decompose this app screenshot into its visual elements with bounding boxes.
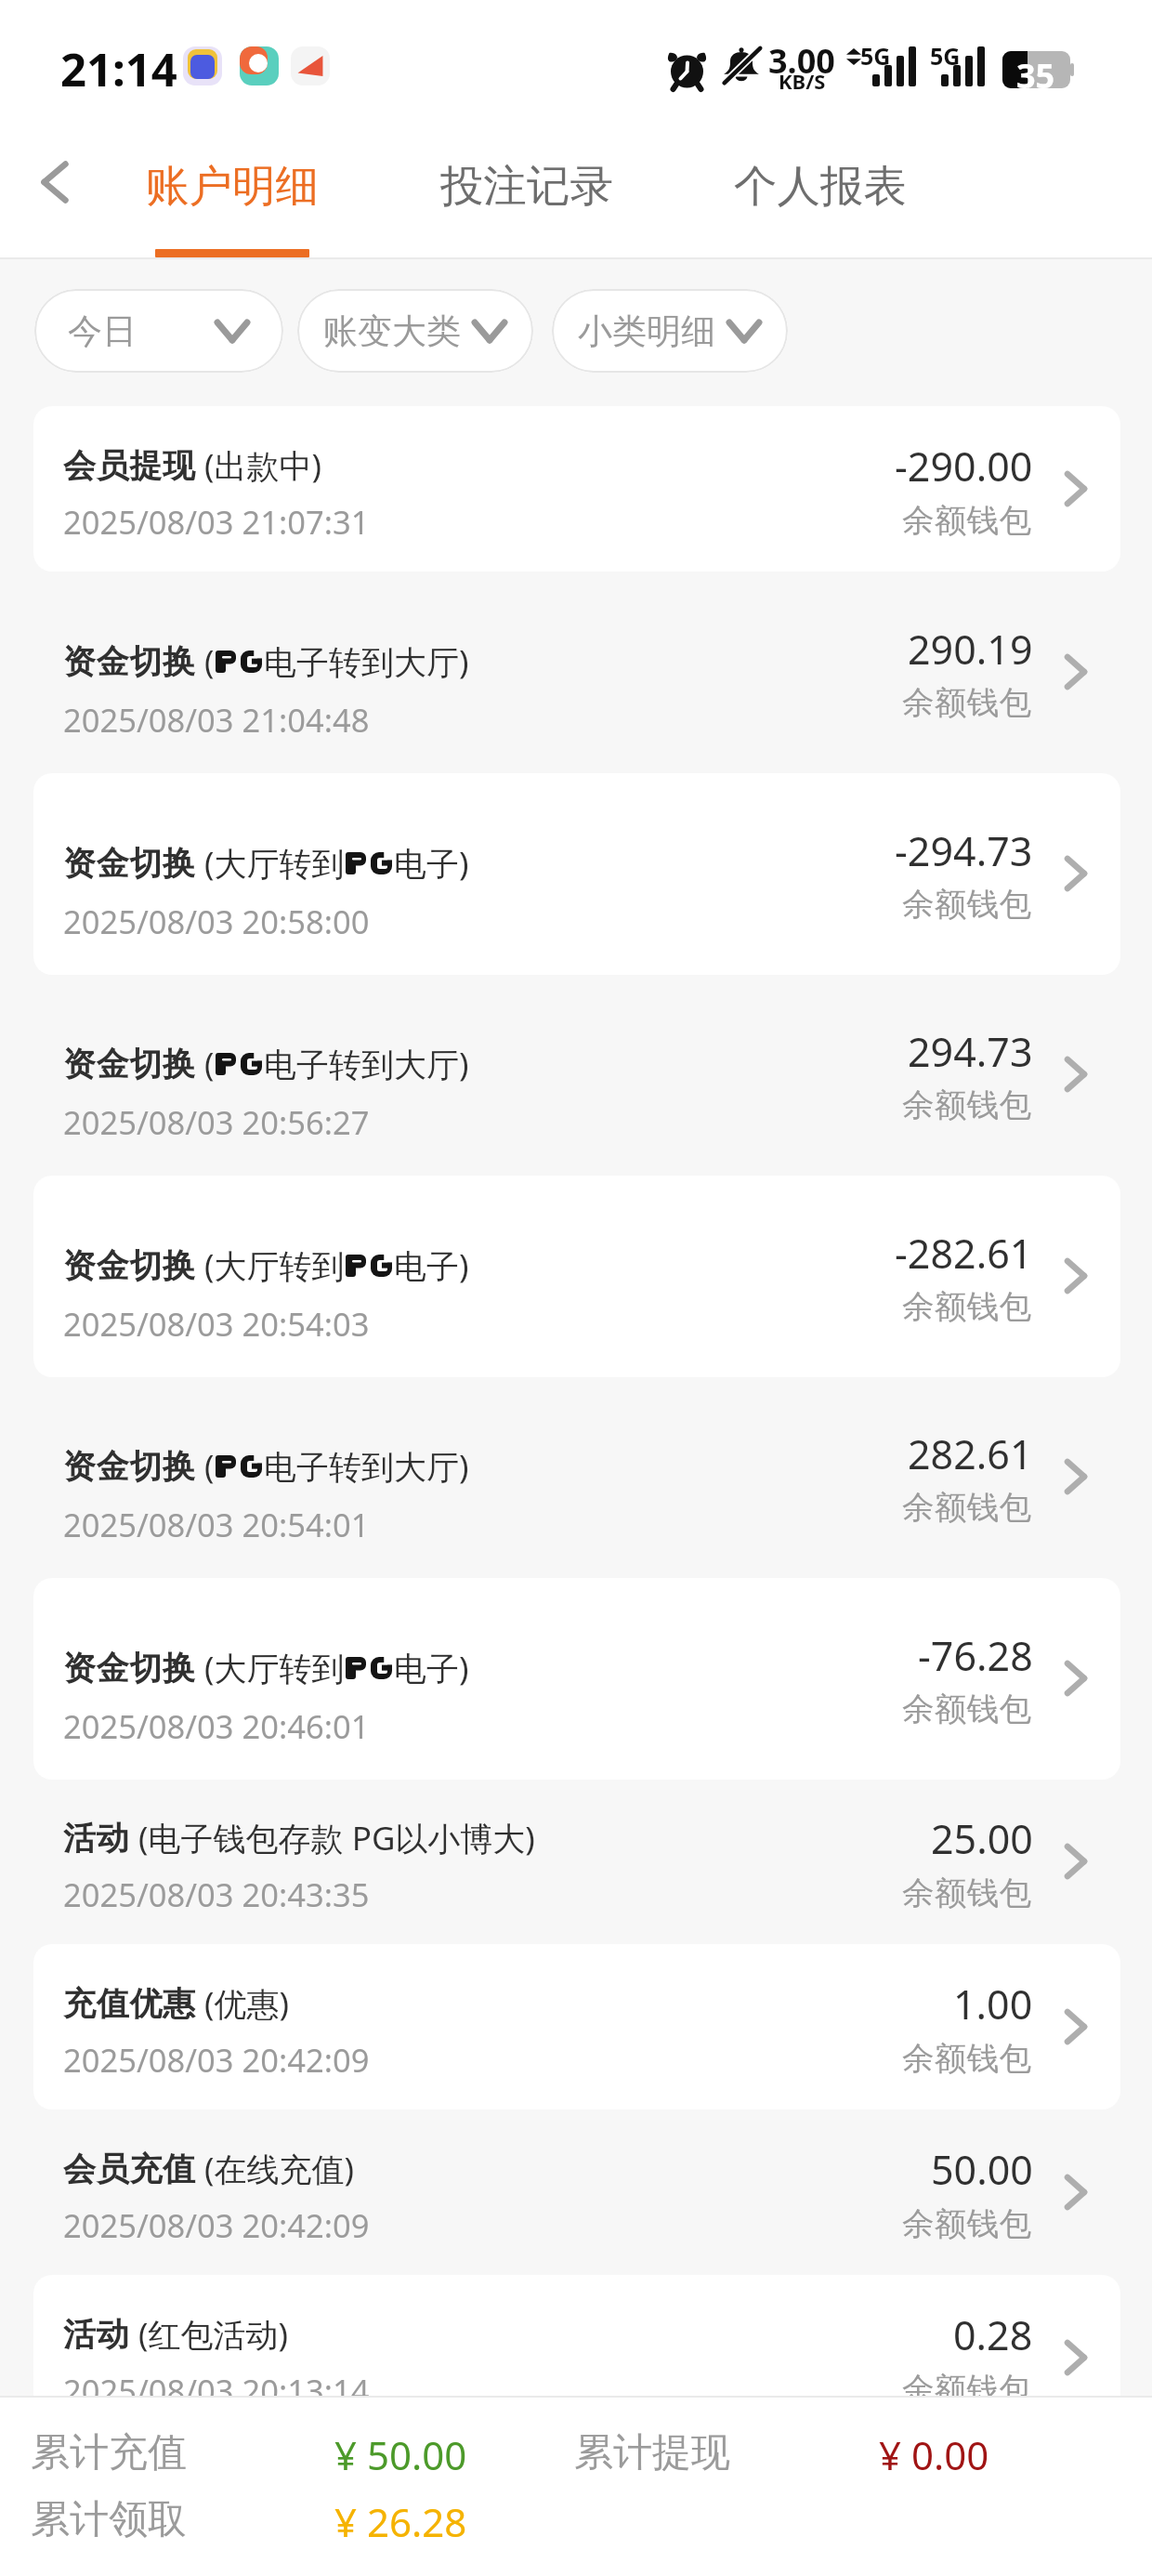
staticText: 余额钱包	[902, 682, 1032, 723]
staticText: 资金切换	[63, 1245, 196, 1286]
staticText: 累计领取	[31, 2495, 187, 2544]
staticText: 余额钱包	[902, 1689, 1032, 1729]
staticText: 余额钱包	[902, 2038, 1032, 2079]
staticText: 充值优惠	[63, 1983, 196, 2024]
staticText: 290.19	[908, 622, 1033, 677]
staticText: 2025/08/03 21:04:48	[63, 698, 370, 742]
staticText: 2025/08/03 20:46:01	[63, 1704, 370, 1748]
staticText: 2025/08/03 20:54:01	[63, 1503, 370, 1546]
staticText: 今日	[68, 309, 137, 353]
staticText: 电子)	[394, 1243, 469, 1288]
staticText: 2025/08/03 20:42:09	[63, 2038, 370, 2082]
staticText: 25.00	[931, 1811, 1033, 1866]
staticText: 电子转到大厅)	[264, 1042, 469, 1086]
staticText: 282.61	[908, 1426, 1033, 1481]
staticText: -76.28	[918, 1628, 1033, 1683]
button[interactable]: 小类明细	[552, 289, 788, 373]
button[interactable]: 账变大类	[297, 289, 533, 373]
staticText: 投注记录	[440, 159, 613, 214]
staticText: (大厅转到	[196, 841, 345, 886]
staticText: (电子钱包存款 PG以小博大)	[130, 1816, 535, 1860]
staticText: 35	[1016, 53, 1055, 99]
staticText: 账变大类	[323, 309, 461, 353]
staticText: 21:14	[60, 38, 177, 100]
staticText: 余额钱包	[902, 1873, 1032, 1913]
staticText: 2025/08/03 20:43:35	[63, 1873, 370, 1916]
button[interactable]: 投注记录	[425, 139, 629, 259]
button[interactable]: 资金切换	[0, 1176, 1152, 1377]
staticText: 累计充值	[31, 2428, 187, 2477]
staticText: 50.00	[931, 2142, 1033, 2197]
staticText: (大厅转到	[196, 1243, 345, 1288]
staticText: KB/S	[779, 67, 826, 95]
staticText: 5G	[930, 40, 961, 72]
button[interactable]: 会员充值	[0, 2109, 1152, 2275]
staticText: 2025/08/03 20:54:03	[63, 1302, 370, 1346]
button[interactable]: 活动	[0, 2275, 1152, 2440]
staticText: 2025/08/03 20:42:09	[63, 2203, 370, 2247]
staticText: -290.00	[895, 439, 1033, 493]
staticText: 2025/08/03 21:07:31	[63, 500, 370, 544]
button[interactable]: 资金切换	[0, 572, 1152, 773]
button[interactable]: 个人报表	[718, 139, 923, 259]
button[interactable]: Back	[14, 139, 96, 225]
button[interactable]: 资金切换	[0, 1376, 1152, 1578]
button[interactable]: 会员提现	[0, 406, 1152, 572]
staticText: 0.28	[953, 2307, 1033, 2362]
staticText: 电子转到大厅)	[264, 1444, 469, 1489]
staticText: 294.73	[908, 1024, 1033, 1079]
staticText: 资金切换	[63, 843, 196, 884]
button[interactable]: 今日	[34, 289, 283, 373]
button[interactable]: 充值优惠	[0, 1944, 1152, 2109]
staticText: ¥ 26.28	[334, 2495, 467, 2548]
staticText: 5G	[860, 40, 891, 72]
staticText: (在线充值)	[196, 2147, 355, 2191]
button[interactable]: 资金切换	[0, 1578, 1152, 1780]
staticText: 余额钱包	[902, 884, 1032, 925]
staticText: ¥ 0.00	[879, 2428, 989, 2481]
staticText: 会员充值	[63, 2149, 196, 2189]
staticText: (	[196, 1444, 215, 1489]
staticText: 资金切换	[63, 641, 196, 682]
staticText: (优惠)	[196, 1981, 290, 2026]
staticText: 个人报表	[734, 159, 907, 214]
staticText: 1.00	[953, 1977, 1033, 2031]
staticText: 电子转到大厅)	[264, 639, 469, 684]
staticText: 资金切换	[63, 1446, 196, 1487]
staticText: 累计提现	[574, 2428, 730, 2477]
button[interactable]: 账户明细	[130, 139, 334, 259]
staticText: 余额钱包	[902, 1286, 1032, 1327]
staticText: 资金切换	[63, 1044, 196, 1084]
staticText: (	[196, 1042, 215, 1086]
staticText: (	[196, 639, 215, 684]
staticText: 电子)	[394, 1646, 469, 1690]
staticText: 电子)	[394, 841, 469, 886]
staticText: 会员提现	[63, 445, 196, 486]
staticText: -294.73	[895, 823, 1033, 878]
staticText: 余额钱包	[902, 1084, 1032, 1125]
staticText: 活动	[63, 1818, 130, 1859]
staticText: 账户明细	[146, 159, 319, 214]
staticText: (大厅转到	[196, 1646, 345, 1690]
staticText: 2025/08/03 20:56:27	[63, 1100, 370, 1144]
staticText: 余额钱包	[902, 2369, 1032, 2410]
staticText: 活动	[63, 2314, 130, 2355]
staticText: -282.61	[895, 1226, 1033, 1281]
button[interactable]: 资金切换	[0, 974, 1152, 1176]
staticText: 2025/08/03 20:58:00	[63, 900, 370, 943]
staticText: (红包活动)	[130, 2312, 289, 2357]
staticText: ¥ 50.00	[334, 2428, 467, 2481]
staticText: 余额钱包	[902, 1487, 1032, 1528]
button[interactable]: 资金切换	[0, 773, 1152, 975]
staticText: 余额钱包	[902, 2203, 1032, 2244]
staticText: 3.00	[768, 38, 835, 84]
staticText: 余额钱包	[902, 500, 1032, 541]
button[interactable]: 活动	[0, 1779, 1152, 1944]
staticText: 资金切换	[63, 1648, 196, 1689]
staticText: 2025/08/03 20:13:14	[63, 2369, 370, 2412]
staticText: 小类明细	[578, 309, 715, 353]
staticText: (出款中)	[196, 443, 322, 488]
